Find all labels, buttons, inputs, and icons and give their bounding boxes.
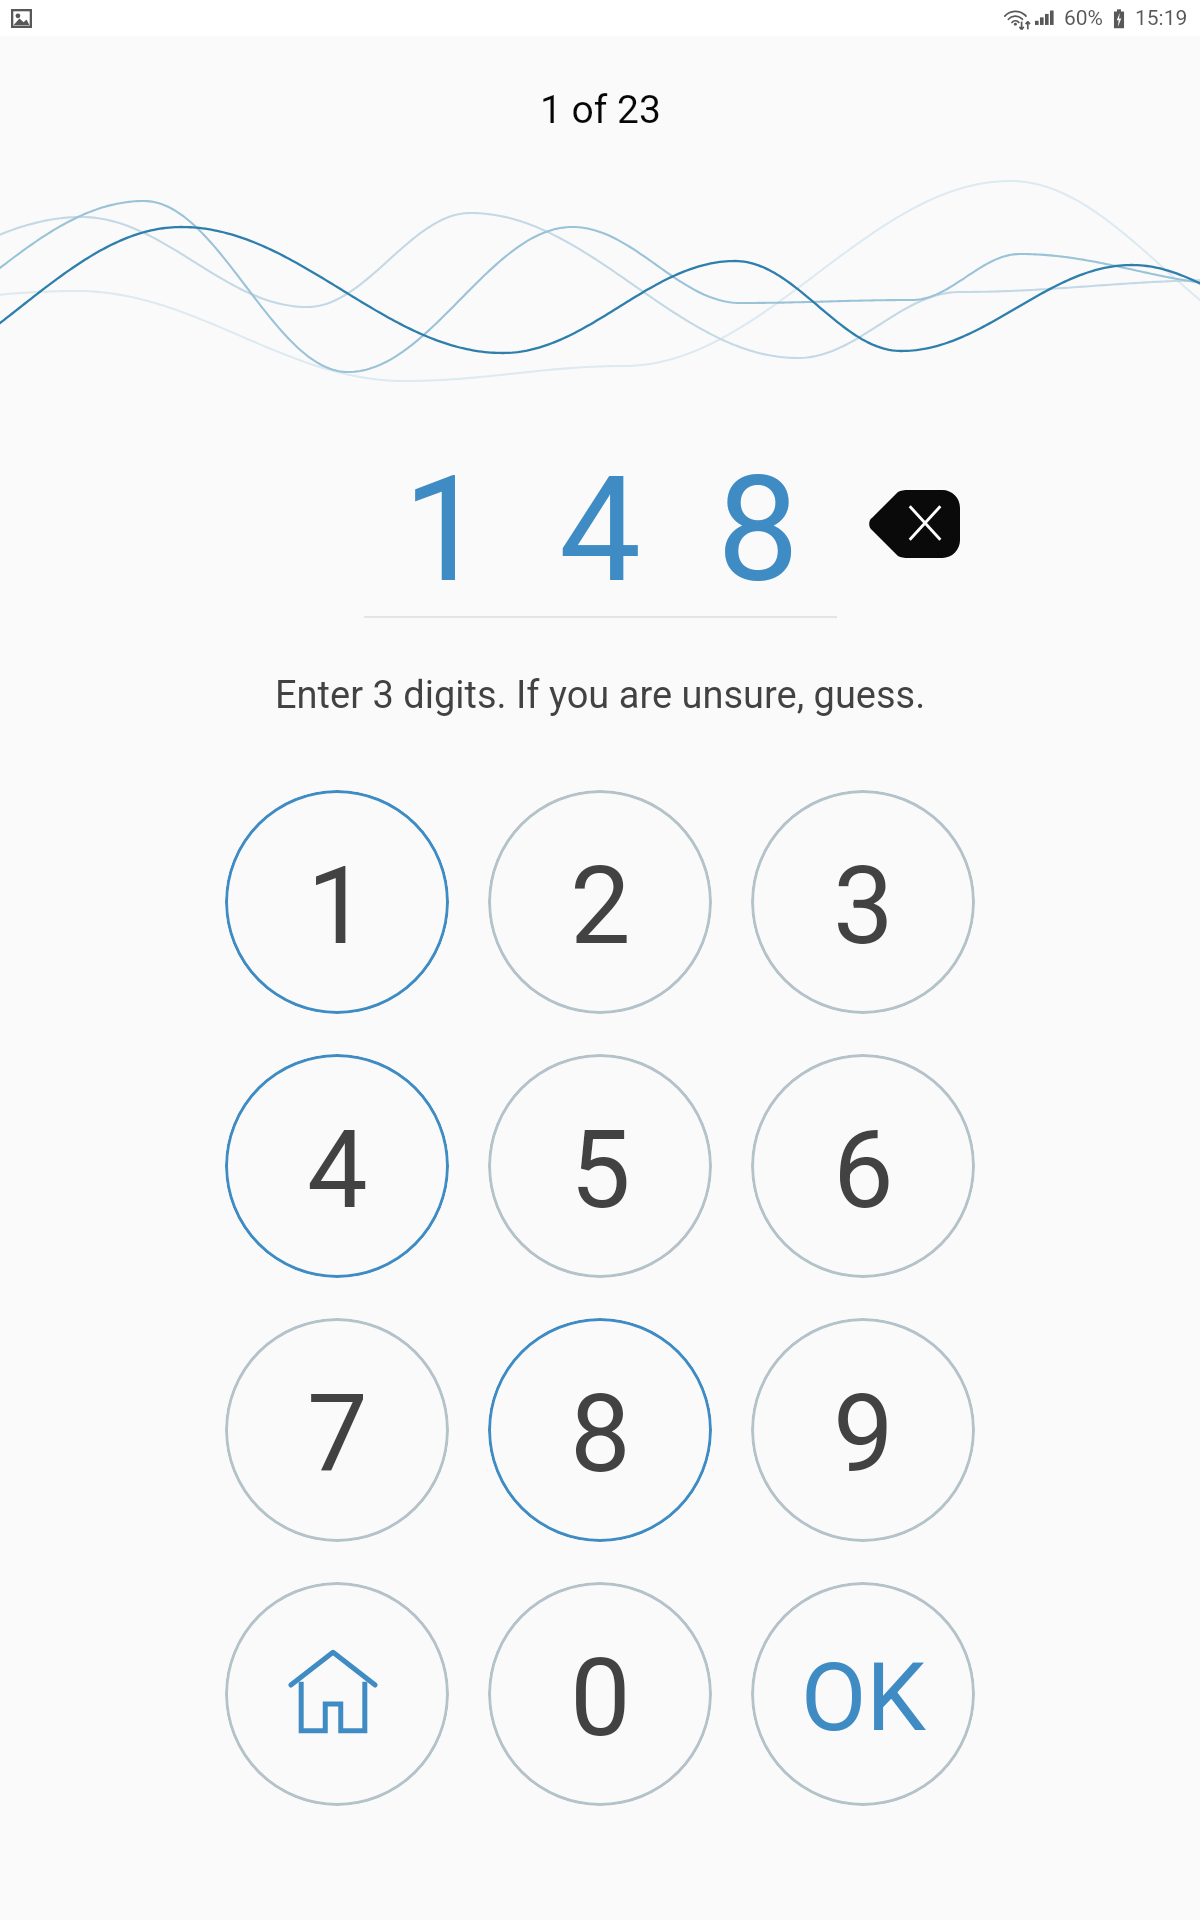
button[interactable]: 7 [225, 1318, 449, 1542]
button[interactable]: Home [225, 1582, 449, 1806]
button[interactable]: 4 [225, 1054, 449, 1278]
staticText: 5 [570, 1107, 631, 1234]
staticText: 1 of 23 [540, 87, 661, 133]
staticText: 8 [570, 1371, 631, 1498]
staticText: 1 [403, 445, 486, 616]
button[interactable]: 2 [488, 790, 712, 1014]
staticText: 15:19 [1135, 6, 1188, 31]
button[interactable]: 8 [488, 1318, 712, 1542]
staticText: 4 [559, 445, 642, 616]
button[interactable]: 0 [488, 1582, 712, 1806]
button[interactable]: OK [751, 1582, 975, 1806]
staticText: 0 [570, 1635, 631, 1762]
staticText: 8 [717, 445, 800, 616]
button[interactable]: 9 [751, 1318, 975, 1542]
staticText: 2 [570, 843, 631, 970]
staticText: 4 [307, 1107, 368, 1234]
other: Screenshot saved [11, 9, 32, 28]
staticText: 6 [833, 1107, 894, 1234]
staticText: OK [801, 1642, 926, 1753]
staticText: 60% [1064, 6, 1103, 31]
staticText: Enter 3 digits. If you are unsure, guess… [275, 673, 926, 718]
button[interactable]: 6 [751, 1054, 975, 1278]
button[interactable]: 5 [488, 1054, 712, 1278]
staticText: 7 [307, 1371, 368, 1498]
staticText: 3 [833, 843, 894, 970]
staticText: 1 [307, 843, 368, 970]
staticText: 9 [833, 1371, 894, 1498]
button[interactable]: Backspace [866, 490, 960, 558]
button[interactable]: 1 [225, 790, 449, 1014]
button[interactable]: 3 [751, 790, 975, 1014]
